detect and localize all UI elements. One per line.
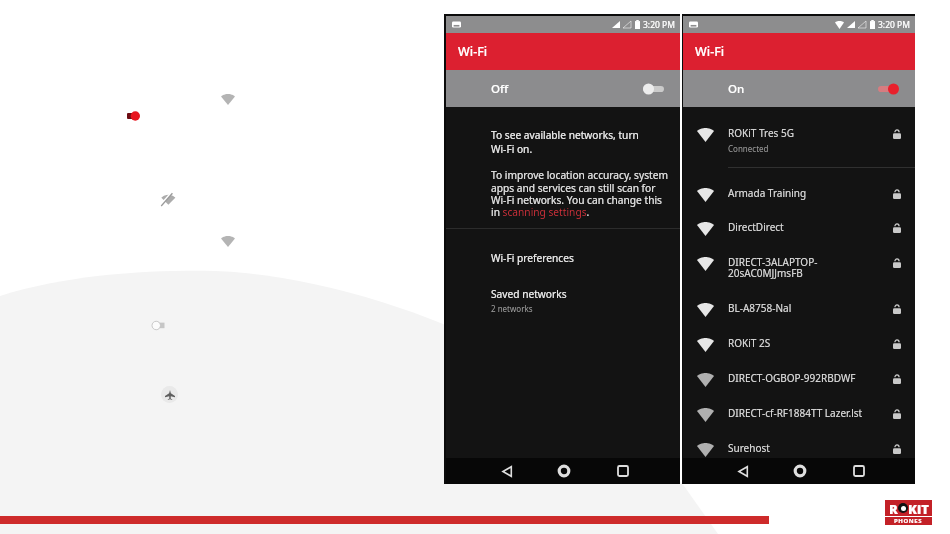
button[interactable]: Recents	[848, 460, 870, 482]
staticText: DirectDirect	[728, 220, 784, 234]
button[interactable]: DirectDirect	[683, 220, 915, 234]
button[interactable]: DIRECT-3ALAPTOP- 20sAC0MJJmsFB	[683, 255, 915, 281]
button[interactable]: Back	[732, 460, 754, 482]
staticText: Armada Training	[728, 186, 807, 200]
staticText: Saved networks	[491, 287, 567, 301]
button[interactable]: ROKiT 2S	[683, 336, 915, 350]
button[interactable]: ROKiT Phones	[885, 500, 932, 525]
staticText: To see available networks, turn Wi-Fi on…	[491, 128, 639, 156]
button[interactable]: Surehost	[683, 441, 915, 455]
button[interactable]: Saved networks	[446, 287, 680, 314]
staticText: DIRECT-3ALAPTOP- 20sAC0MJJmsFB	[728, 255, 818, 280]
button[interactable]: Armada Training	[683, 186, 915, 200]
button[interactable]: On	[683, 70, 915, 107]
staticText: On	[728, 81, 745, 97]
staticText: BL-A8758-Nal	[728, 301, 792, 315]
staticText: Off	[491, 81, 509, 97]
button[interactable]: Home	[553, 460, 575, 482]
staticText: 3:20 PM	[643, 19, 675, 31]
staticText: Wi-Fi	[458, 43, 488, 60]
button[interactable]: DIRECT-cf-RF1884TT Lazer.lst	[683, 406, 915, 420]
button[interactable]: ROKiT Tres 5G	[683, 126, 915, 152]
staticText: Wi-Fi preferences	[491, 251, 574, 265]
staticText: ROKiT Tres 5G	[728, 126, 794, 140]
button[interactable]: Home	[789, 460, 811, 482]
staticText: Wi-Fi	[695, 43, 725, 60]
button[interactable]: Wi-Fi preferences	[446, 251, 680, 275]
staticText: 2 networks	[491, 303, 533, 314]
staticText: DIRECT-OGBOP-992RBDWF	[728, 371, 856, 385]
staticText: Connected	[728, 143, 769, 152]
staticText: Surehost	[728, 441, 770, 455]
button[interactable]: Back	[496, 460, 518, 482]
staticText: DIRECT-cf-RF1884TT Lazer.lst	[728, 406, 863, 420]
button[interactable]: BL-A8758-Nal	[683, 301, 915, 315]
staticText: 3:20 PM	[878, 19, 910, 31]
staticText: To improve location accuracy, system app…	[491, 168, 668, 219]
staticText: PHONES	[894, 517, 923, 525]
staticText: R	[889, 500, 898, 516]
button[interactable]: Recents	[612, 460, 634, 482]
button[interactable]: Off	[446, 70, 680, 107]
staticText: KiT	[908, 500, 929, 516]
staticText: ROKiT 2S	[728, 336, 771, 350]
button[interactable]: DIRECT-OGBOP-992RBDWF	[683, 371, 915, 385]
